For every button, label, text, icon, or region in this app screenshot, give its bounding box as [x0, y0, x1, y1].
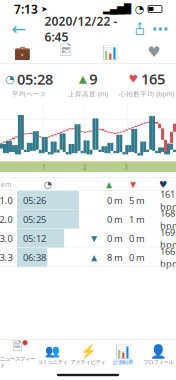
staticText: ▲: [91, 253, 97, 262]
staticText: ♥: [159, 179, 167, 190]
staticText: 計測結果: [113, 359, 133, 366]
staticText: ◔: [131, 3, 148, 15]
staticText: 7:13: [14, 1, 38, 17]
staticText: 📊: [115, 343, 132, 359]
staticText: 2020/12/22 - 6:45: [44, 13, 117, 45]
staticText: ⚡: [79, 343, 96, 359]
staticText: ➤: [38, 4, 48, 14]
staticText: 平均ペース: [12, 90, 47, 98]
button[interactable]: アクティビティ: [70, 340, 106, 370]
staticText: 06:38: [23, 251, 46, 264]
staticText: ⋯: [152, 20, 168, 38]
staticText: 9: [89, 69, 97, 88]
staticText: 05:12: [23, 232, 46, 245]
staticText: 3.0: [0, 232, 12, 245]
staticText: 💼: [13, 44, 30, 60]
button[interactable]: Charts: [88, 40, 132, 64]
staticText: 0 m: [129, 232, 145, 245]
staticText: 上昇高度 (m): [68, 89, 108, 98]
button[interactable]: ニュースフィード: [0, 340, 35, 370]
button[interactable]: Back: [6, 18, 32, 40]
button[interactable]: 2.0: [0, 210, 176, 229]
staticText: ◔: [44, 179, 52, 190]
staticText: 169 bpm: [160, 226, 176, 251]
staticText: ▼: [91, 234, 97, 243]
button[interactable]: 計測結果: [106, 340, 141, 370]
staticText: ▲: [106, 180, 112, 189]
staticText: 05:28: [17, 69, 53, 89]
staticText: 心拍数平均 (bpm): [119, 89, 174, 98]
staticText: ニュースフィード: [0, 356, 35, 369]
staticText: ↑: [136, 21, 144, 31]
button[interactable]: 1.0: [0, 191, 176, 210]
staticText: 0 m: [107, 194, 123, 207]
staticText: ←: [11, 19, 26, 39]
button[interactable]: 3.3: [0, 248, 176, 267]
staticText: 0 m: [107, 232, 123, 245]
staticText: 1.0: [0, 194, 12, 207]
button[interactable]: Share: [130, 18, 150, 40]
button[interactable]: Photos: [44, 40, 88, 64]
staticText: 5 m: [129, 194, 145, 207]
staticText: 🖻: [60, 40, 72, 64]
staticText: ♥: [128, 73, 138, 85]
staticText: 1: [42, 162, 46, 171]
staticText: 8 m: [107, 251, 123, 264]
staticText: 3.3: [0, 251, 12, 264]
staticText: 2: [83, 162, 87, 171]
staticText: 3: [124, 162, 128, 171]
staticText: ♥: [147, 44, 160, 60]
staticText: 🖹: [13, 338, 23, 358]
staticText: 2.0: [0, 213, 12, 226]
staticText: ▼: [130, 180, 136, 189]
button[interactable]: Heart rate: [132, 40, 176, 64]
button[interactable]: 3.0: [0, 229, 176, 248]
staticText: ▲: [79, 73, 87, 85]
staticText: ◔: [6, 73, 15, 85]
staticText: 05:25: [23, 213, 46, 226]
button[interactable]: More options: [150, 18, 170, 40]
staticText: km: [1, 180, 11, 189]
staticText: 05:26: [23, 194, 46, 207]
staticText: 📊: [101, 44, 118, 60]
staticText: 👥: [45, 344, 60, 358]
staticText: プロフィール: [143, 359, 173, 366]
staticText: 168 bpm: [160, 207, 176, 232]
staticText: 161 bpm: [160, 188, 176, 213]
staticText: 0 m: [129, 251, 145, 264]
staticText: コミュニティ: [38, 359, 68, 366]
staticText: アクティビティ: [70, 359, 105, 366]
staticText: 0 m: [107, 213, 123, 226]
button[interactable]: Summary: [0, 40, 44, 64]
staticText: ▂▄▆█: [103, 4, 131, 14]
staticText: 165: [141, 69, 165, 88]
button[interactable]: コミュニティ: [35, 340, 70, 370]
staticText: 1 m: [129, 213, 145, 226]
staticText: 166 bpm: [160, 245, 176, 270]
staticText: 👤: [150, 343, 167, 359]
button[interactable]: プロフィール: [141, 340, 176, 370]
